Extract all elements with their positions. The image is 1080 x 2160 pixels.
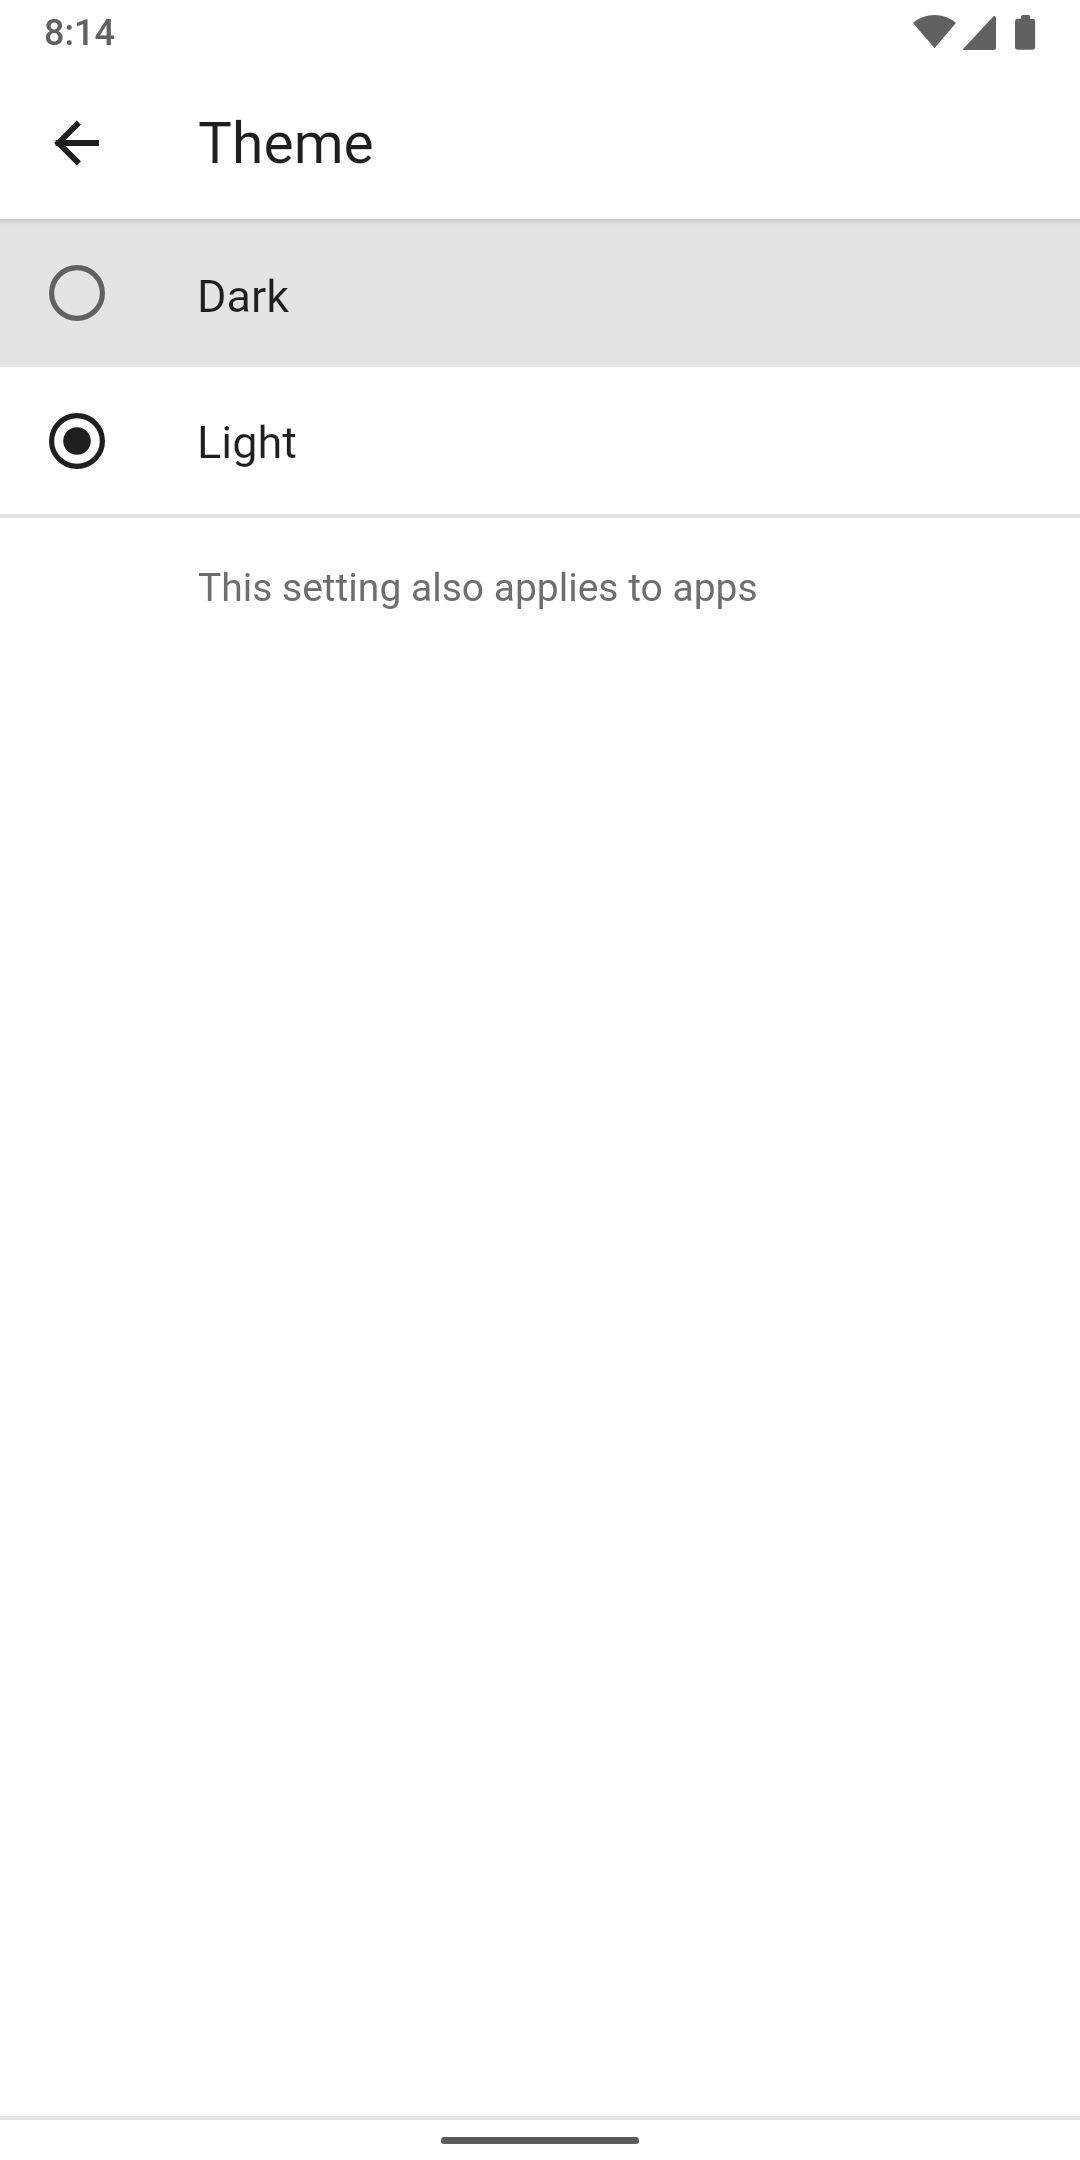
staticText: This setting also applies to apps [198,565,758,611]
staticText: 8:14 [44,12,115,54]
staticText: Dark [197,270,290,323]
staticText: Light [197,416,297,469]
button[interactable]: Navigate up [22,88,132,198]
button[interactable]: Light [0,367,1080,514]
button[interactable]: Dark [0,219,1080,367]
staticText: Theme [198,110,374,177]
